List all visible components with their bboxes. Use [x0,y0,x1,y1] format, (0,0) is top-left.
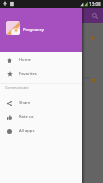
button[interactable]: Favorites [0,67,82,81]
staticText: Pregnancy [23,27,44,33]
button[interactable]: Search [89,10,100,21]
button[interactable]: Rate us [0,110,82,124]
button[interactable]: Share [0,96,82,110]
staticText: Rate us [19,114,34,120]
staticText: Share [19,100,31,106]
staticText: 13:08 [89,1,101,7]
staticText: All apps [19,128,35,134]
staticText: Favorites [19,71,37,77]
button[interactable]: Home [0,53,82,67]
button[interactable]: App icon [6,21,20,35]
staticText: Communicate [5,85,29,90]
staticText: Home [19,57,31,63]
button[interactable]: All apps [0,124,82,138]
